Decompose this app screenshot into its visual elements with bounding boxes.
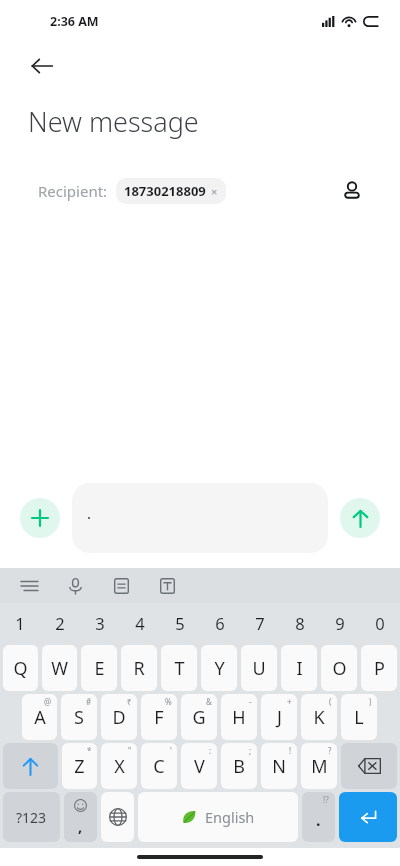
button[interactable]: A — [22, 694, 57, 740]
button[interactable]: Add attachment — [20, 498, 60, 538]
staticText: 2 — [55, 612, 65, 634]
button[interactable]: 4 — [120, 603, 160, 643]
staticText: M — [311, 754, 328, 779]
button[interactable]: 7 — [240, 603, 280, 643]
staticText: E — [94, 656, 105, 681]
staticText: New message — [28, 103, 199, 140]
staticText: ; — [249, 745, 252, 756]
staticText: C — [153, 754, 165, 779]
button[interactable]: B — [221, 743, 257, 789]
staticText: , — [78, 816, 83, 836]
staticText: 7 — [255, 612, 265, 634]
button[interactable]: X — [101, 743, 137, 789]
staticText: N — [272, 754, 286, 779]
button[interactable]: L — [341, 694, 377, 740]
button[interactable]: Text editing — [154, 573, 180, 599]
button[interactable]: H — [221, 694, 257, 740]
staticText: & — [206, 696, 212, 707]
button[interactable]: I — [281, 645, 317, 691]
button[interactable]: W — [42, 645, 77, 691]
button[interactable]: N — [261, 743, 297, 789]
button[interactable]: ?123 — [3, 792, 60, 842]
staticText: G — [192, 705, 206, 730]
button[interactable]: 2 — [40, 603, 80, 643]
staticText: Y — [214, 656, 225, 681]
button[interactable]: 8 — [280, 603, 320, 643]
button[interactable]: Z — [62, 743, 97, 789]
button[interactable]: Contacts — [332, 171, 372, 211]
button[interactable]: 9 — [320, 603, 360, 643]
staticText: F — [154, 705, 164, 730]
button[interactable]: 0 — [360, 603, 400, 643]
button[interactable]: 3 — [80, 603, 120, 643]
staticText: × — [211, 184, 218, 199]
button[interactable]: G — [181, 694, 217, 740]
button[interactable]: F — [141, 694, 177, 740]
staticText: ?123 — [16, 808, 47, 827]
button[interactable]: K — [301, 694, 337, 740]
button[interactable]: Change language — [101, 792, 134, 842]
button[interactable]: V — [181, 743, 217, 789]
button[interactable]: Period — [302, 792, 335, 842]
button[interactable]: Back — [20, 44, 64, 88]
staticText: 9 — [335, 612, 345, 634]
staticText: P — [374, 656, 385, 681]
button[interactable]: E — [81, 645, 117, 691]
staticText: L — [354, 705, 364, 730]
button[interactable]: Send — [340, 498, 380, 538]
button[interactable]: M — [301, 743, 337, 789]
staticText: J — [277, 705, 282, 730]
button[interactable]: English — [138, 792, 298, 842]
staticText: Recipient: — [38, 181, 108, 201]
staticText: R — [133, 656, 145, 681]
button[interactable]: D — [101, 694, 137, 740]
staticText: 3 — [95, 612, 105, 634]
button[interactable]: R — [121, 645, 157, 691]
staticText: ) — [369, 696, 372, 707]
button[interactable]: Backspace — [341, 743, 397, 789]
button[interactable]: Y — [201, 645, 237, 691]
staticText: Q — [13, 656, 28, 681]
button[interactable]: O — [321, 645, 357, 691]
staticText: B — [233, 754, 245, 779]
button[interactable]: P — [361, 645, 397, 691]
staticText: D — [112, 705, 126, 730]
button[interactable]: Q — [3, 645, 38, 691]
staticText: 6 — [215, 612, 225, 634]
staticText: U — [252, 656, 266, 681]
button[interactable]: 5 — [160, 603, 200, 643]
staticText: 4 — [135, 612, 145, 634]
button[interactable]: S — [61, 694, 97, 740]
staticText: ! — [289, 745, 292, 756]
button[interactable]: C — [141, 743, 177, 789]
button[interactable]: Voice input — [62, 573, 88, 599]
staticText: : — [209, 745, 212, 756]
staticText: @ — [44, 696, 52, 707]
button[interactable]: Enter — [339, 792, 397, 842]
staticText: 0 — [375, 612, 385, 634]
staticText: H — [232, 705, 246, 730]
button[interactable]: 1 — [0, 603, 40, 643]
button[interactable]: U — [241, 645, 277, 691]
staticText: 1 — [15, 612, 25, 634]
button[interactable]: Recipient: — [0, 152, 400, 230]
button[interactable]: T — [161, 645, 197, 691]
button[interactable]: 6 — [200, 603, 240, 643]
staticText: 8 — [295, 612, 305, 634]
staticText: K — [313, 705, 325, 730]
staticText: Z — [74, 754, 85, 779]
button[interactable]: J — [261, 694, 297, 740]
button[interactable]: 18730218809 — [124, 182, 218, 200]
button[interactable]: Emoji and comma — [64, 792, 97, 842]
staticText: + — [287, 696, 292, 707]
button[interactable]: Shift — [3, 743, 58, 789]
staticText: O — [332, 656, 347, 681]
staticText: . — [316, 809, 321, 831]
staticText: I — [296, 656, 303, 681]
staticText: S — [74, 705, 84, 730]
staticText: A — [34, 705, 46, 730]
button[interactable]: Menu — [16, 573, 42, 599]
staticText: % — [165, 696, 172, 707]
button[interactable]: Clipboard — [108, 573, 134, 599]
